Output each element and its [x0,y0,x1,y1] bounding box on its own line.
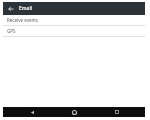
button[interactable]: Home [60,107,88,117]
button[interactable]: Back [18,107,46,117]
button[interactable]: GPS [3,26,145,36]
staticText: Email [19,5,33,12]
staticText: Receive events [7,17,39,23]
staticText: GPS [7,28,16,34]
button[interactable]: Navigate up [5,3,16,14]
button[interactable]: Recent apps [103,107,131,117]
button[interactable]: Receive events [3,15,145,25]
